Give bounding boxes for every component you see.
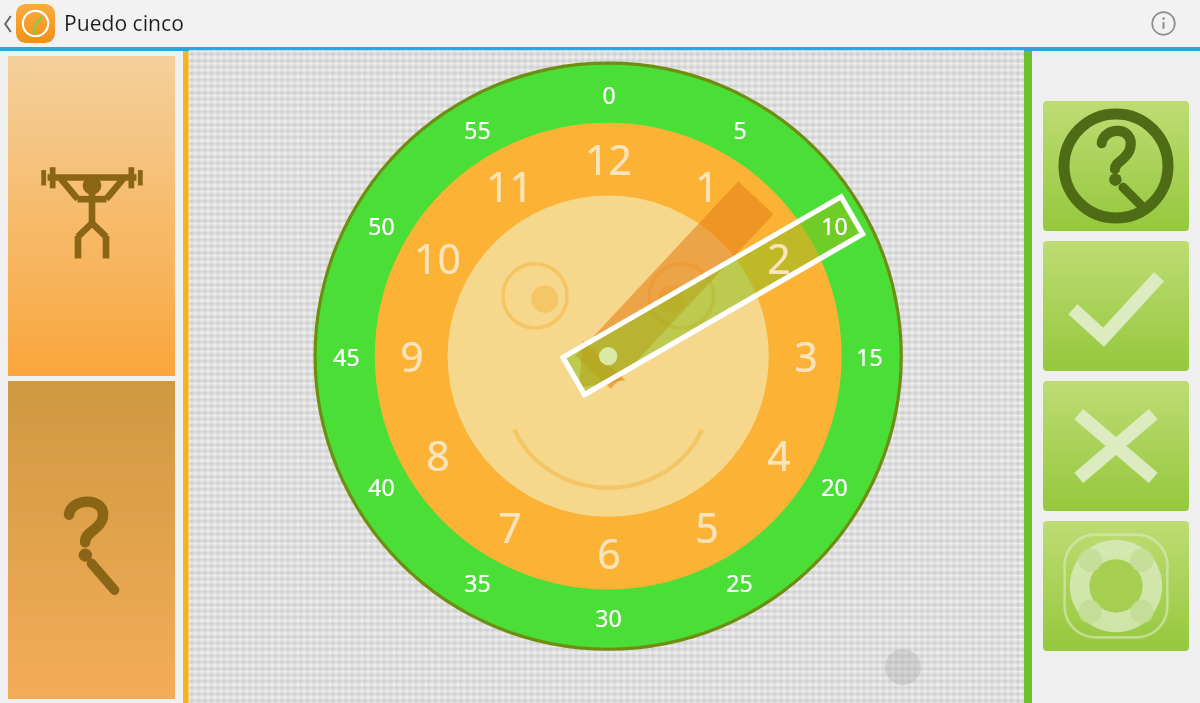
button[interactable]: Lifebuoy [1043,521,1189,651]
staticText: 5 [733,114,747,145]
staticText: 10 [414,230,461,286]
staticText: 5 [695,499,719,555]
staticText: 0 [602,79,616,110]
button[interactable]: Unknown time [8,381,175,699]
staticText: 1 [695,158,719,214]
staticText: 15 [856,341,883,372]
staticText: 2 [767,230,791,286]
staticText: 55 [464,114,491,145]
staticText: 45 [333,341,360,372]
staticText: 40 [368,471,395,502]
staticText: 25 [726,567,753,598]
staticText: 12 [585,131,632,187]
button[interactable]: Information [1136,0,1190,47]
button[interactable]: Puedo cinco [16,2,184,45]
staticText: 4 [767,427,791,483]
button[interactable]: Help [1043,101,1189,231]
staticText: 20 [821,471,848,502]
button[interactable]: Back [0,0,16,47]
staticText: 10 [821,210,848,241]
staticText: 6 [597,525,621,581]
staticText: 11 [486,158,533,214]
staticText: Puedo cinco [64,9,184,38]
staticText: 9 [400,328,424,384]
staticText: 7 [498,499,522,555]
staticText: 35 [464,567,491,598]
staticText: 8 [426,427,450,483]
button[interactable]: Exercise [8,56,175,376]
staticText: 3 [794,328,818,384]
staticText: 50 [368,210,395,241]
button[interactable]: Reject [1043,381,1189,511]
button[interactable]: Accept [1043,241,1189,371]
staticText: 30 [595,602,622,633]
